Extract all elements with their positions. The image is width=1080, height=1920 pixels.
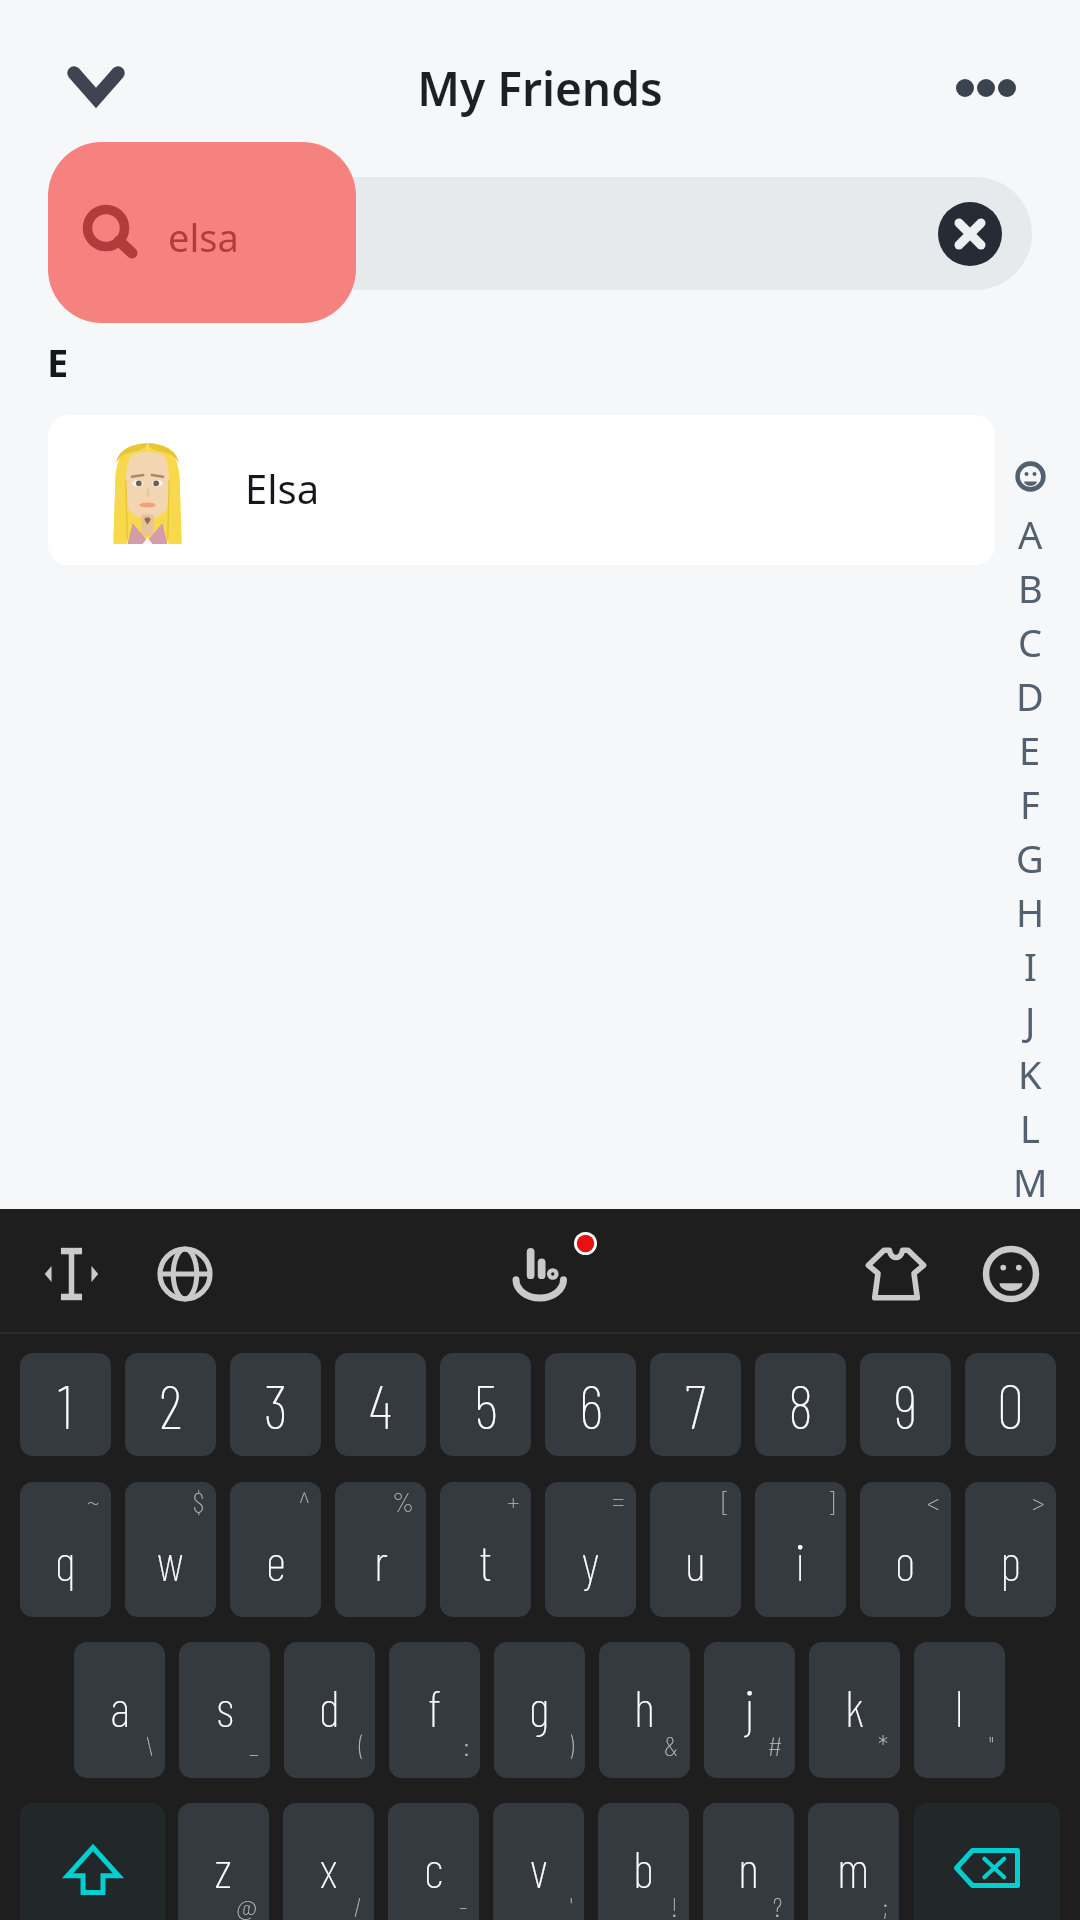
staticText: l (955, 1676, 964, 1737)
staticText: ^ (299, 1484, 310, 1518)
button[interactable]: ? (703, 1803, 794, 1920)
staticText: * (878, 1728, 889, 1762)
staticText: 2 (159, 1368, 183, 1441)
button[interactable]: ) (494, 1642, 585, 1778)
button[interactable]: Bitmoji (1001, 454, 1059, 498)
staticText: G (1016, 832, 1044, 884)
button[interactable]: 0 (965, 1353, 1056, 1456)
staticText: My Friends (0, 57, 1080, 120)
button[interactable]: Backspace (914, 1803, 1060, 1920)
staticText: H (1016, 886, 1045, 938)
button[interactable]: * (809, 1642, 900, 1778)
button[interactable]: + (440, 1482, 531, 1617)
button[interactable]: [ (650, 1482, 741, 1617)
button[interactable]: % (335, 1482, 426, 1617)
button[interactable]: G (1001, 831, 1059, 885)
button[interactable]: > (965, 1482, 1056, 1617)
button[interactable]: K (1001, 1047, 1059, 1101)
staticText: ; (883, 1889, 888, 1920)
button[interactable]: 2 (125, 1353, 216, 1456)
staticText: J (1025, 994, 1036, 1046)
button[interactable]: Switch language (137, 1226, 233, 1322)
button[interactable]: - (388, 1803, 479, 1920)
button[interactable]: " (914, 1642, 1005, 1778)
button[interactable]: & (599, 1642, 690, 1778)
button[interactable]: $ (125, 1482, 216, 1617)
button[interactable]: Keyboard settings (490, 1226, 586, 1322)
button[interactable]: Shift (20, 1803, 165, 1920)
staticText: ] (827, 1484, 835, 1518)
button[interactable]: Emoji (963, 1226, 1059, 1322)
button[interactable]: A (1001, 507, 1059, 561)
button[interactable]: More options (917, 40, 1013, 136)
button[interactable]: Move cursor (23, 1226, 119, 1322)
button[interactable]: D (1001, 669, 1059, 723)
button[interactable]: F (1001, 777, 1059, 831)
staticText: 7 (685, 1368, 706, 1441)
button[interactable]: 8 (755, 1353, 846, 1456)
button[interactable]: ^ (230, 1482, 321, 1617)
button[interactable]: E (1001, 723, 1059, 777)
staticText: m (837, 1837, 870, 1898)
button[interactable]: # (704, 1642, 795, 1778)
staticText: M (1013, 1156, 1048, 1208)
button[interactable]: ( (284, 1642, 375, 1778)
staticText: u (685, 1530, 706, 1591)
staticText: 5 (474, 1368, 498, 1441)
button[interactable]: = (545, 1482, 636, 1617)
button[interactable]: J (1001, 993, 1059, 1047)
button[interactable]: I (1001, 939, 1059, 993)
button[interactable]: Elsa (48, 415, 995, 565)
button[interactable]: Collapse (48, 37, 144, 133)
staticText: - (459, 1889, 468, 1920)
staticText: = (612, 1484, 625, 1518)
button[interactable]: ; (808, 1803, 899, 1920)
button[interactable]: C (1001, 615, 1059, 669)
button[interactable]: / (283, 1803, 374, 1920)
button[interactable]: 9 (860, 1353, 951, 1456)
button[interactable]: Stickers (848, 1226, 944, 1322)
staticText: ? (773, 1889, 783, 1920)
staticText: ) (569, 1728, 574, 1762)
button[interactable]: 7 (650, 1353, 741, 1456)
button[interactable]: H (1001, 885, 1059, 939)
button[interactable]: Clear search (938, 202, 1002, 266)
staticText: _ (249, 1728, 259, 1762)
staticText: n (738, 1837, 759, 1898)
button[interactable]: B (1001, 561, 1059, 615)
button[interactable]: 6 (545, 1353, 636, 1456)
button[interactable]: \ (74, 1642, 165, 1778)
button[interactable]: 4 (335, 1353, 426, 1456)
button[interactable]: _ (179, 1642, 270, 1778)
button[interactable]: M (1001, 1155, 1059, 1209)
staticText: / (354, 1889, 363, 1920)
staticText: d (319, 1676, 340, 1737)
staticText: x (320, 1837, 338, 1898)
button[interactable]: ] (755, 1482, 846, 1617)
staticText: ( (359, 1728, 364, 1762)
staticText: y (582, 1530, 600, 1591)
button[interactable]: ! (598, 1803, 689, 1920)
staticText: g (529, 1676, 550, 1737)
button[interactable]: 1 (20, 1353, 111, 1456)
button[interactable] (48, 177, 1032, 290)
staticText: 6 (579, 1368, 603, 1441)
button[interactable]: 5 (440, 1353, 531, 1456)
staticText: 1 (58, 1368, 73, 1441)
button[interactable]: < (860, 1482, 951, 1617)
staticText: " (989, 1728, 994, 1762)
staticText: ~ (87, 1484, 100, 1518)
staticText: K (1018, 1048, 1042, 1100)
staticText: p (1000, 1530, 1022, 1591)
staticText: 4 (369, 1368, 392, 1441)
button[interactable]: L (1001, 1101, 1059, 1155)
button[interactable]: ~ (20, 1482, 111, 1617)
staticText: Elsa (245, 461, 320, 515)
staticText: I (1024, 940, 1037, 992)
button[interactable]: : (389, 1642, 480, 1778)
staticText: # (767, 1728, 784, 1762)
button[interactable]: @ (178, 1803, 269, 1920)
staticText: 8 (788, 1368, 814, 1441)
button[interactable]: ' (493, 1803, 584, 1920)
button[interactable]: 3 (230, 1353, 321, 1456)
